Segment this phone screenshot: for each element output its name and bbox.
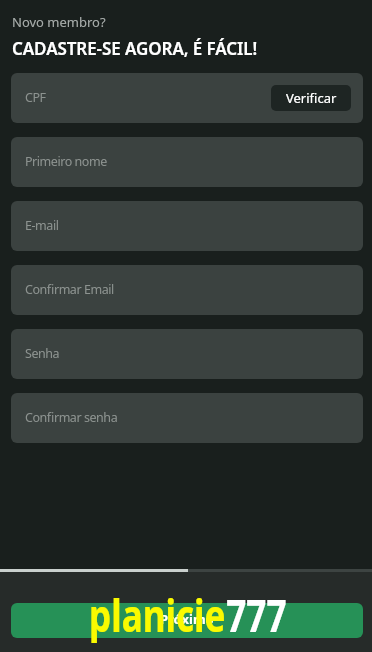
staticText: Verificar [286, 89, 337, 107]
staticText: Confirmar senha [25, 409, 118, 426]
staticText: Primeiro nome [25, 153, 107, 170]
staticText: Novo membro? [12, 13, 106, 31]
staticText: Próximo [160, 610, 214, 628]
button[interactable]: Confirmar senha [11, 393, 363, 443]
button[interactable]: Próximo [11, 603, 363, 638]
staticText: 777 [226, 584, 287, 645]
button[interactable]: CPF [11, 73, 363, 123]
staticText: E-mail [25, 217, 59, 234]
staticText: planicie [89, 584, 226, 645]
staticText: Confirmar Email [25, 281, 114, 298]
button[interactable]: Confirmar Email [11, 265, 363, 315]
button[interactable]: Verificar [271, 85, 351, 111]
staticText: CADASTRE-SE AGORA, É FÁCIL! [12, 37, 258, 60]
staticText: CPF [25, 89, 46, 106]
button[interactable]: E-mail [11, 201, 363, 251]
button[interactable]: Primeiro nome [11, 137, 363, 187]
button[interactable]: Senha [11, 329, 363, 379]
staticText: Senha [25, 345, 60, 362]
